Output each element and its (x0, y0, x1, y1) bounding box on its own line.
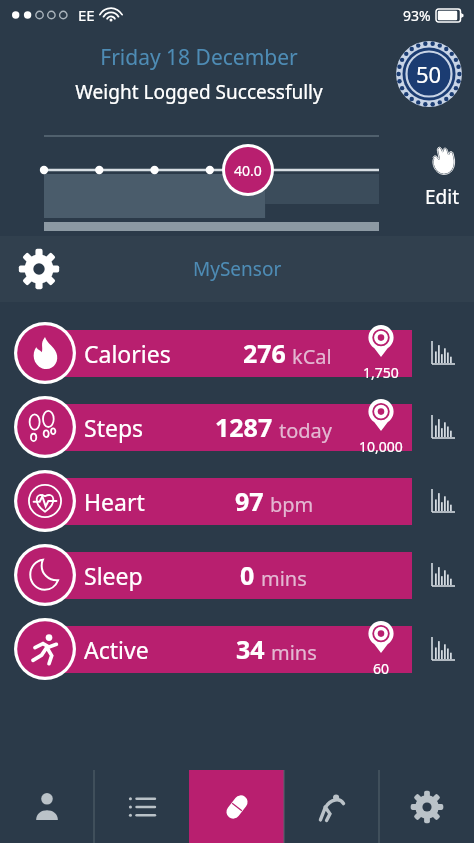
staticText: today (279, 417, 333, 444)
button[interactable]: Heart history chart (426, 484, 460, 518)
button[interactable]: Exercise (284, 770, 379, 843)
staticText: Weight Logged Successfully (75, 79, 323, 105)
staticText: Heart (84, 486, 145, 517)
button[interactable]: Steps history chart (426, 410, 460, 444)
staticText: 0 (240, 558, 255, 592)
staticText: 1,750 (363, 363, 399, 382)
staticText: MySensor (193, 256, 282, 282)
staticText: 50 (416, 59, 442, 89)
staticText: Edit (425, 184, 460, 210)
button[interactable]: List (94, 770, 189, 843)
button[interactable]: Calories (0, 316, 474, 390)
staticText: Calories (84, 338, 171, 369)
staticText: 40.0 (234, 161, 262, 180)
staticText: 1287 (215, 410, 273, 444)
button[interactable]: Settings (18, 248, 60, 290)
staticText: 10,000 (359, 437, 403, 456)
staticText: mins (261, 565, 307, 592)
staticText: Steps (84, 412, 144, 443)
staticText: Active (84, 634, 149, 665)
staticText: kCal (292, 343, 332, 370)
button[interactable]: Score badge 50 (396, 41, 462, 107)
staticText: EE (78, 5, 95, 25)
button[interactable]: Sleep history chart (426, 558, 460, 592)
staticText: 93% (403, 6, 431, 25)
button[interactable]: Edit (425, 144, 460, 210)
button[interactable]: Steps (0, 390, 474, 464)
staticText: 60 (373, 659, 390, 678)
button[interactable]: Active (0, 612, 474, 686)
button[interactable]: Settings (379, 770, 474, 843)
button[interactable]: Sleep (0, 538, 474, 612)
button[interactable]: Calories history chart (426, 336, 460, 370)
staticText: bpm (270, 491, 314, 518)
staticText: Sleep (84, 560, 143, 591)
staticText: 97 (235, 484, 264, 518)
button[interactable]: Profile (0, 770, 94, 843)
button[interactable]: Heart (0, 464, 474, 538)
button[interactable]: Weight (189, 770, 284, 843)
staticText: 276 (243, 336, 286, 370)
staticText: mins (271, 639, 317, 666)
staticText: 34 (236, 632, 265, 666)
button[interactable]: Active history chart (426, 632, 460, 666)
staticText: Friday 18 December (100, 43, 298, 72)
button[interactable]: Weight value 40.0 (222, 144, 274, 196)
